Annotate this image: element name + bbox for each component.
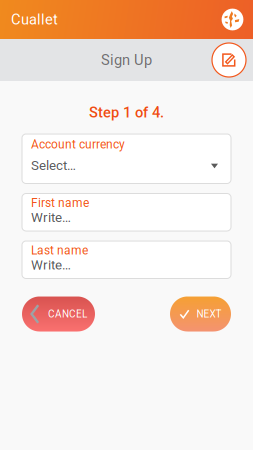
staticText: CANCEL xyxy=(48,308,87,320)
staticText: Select… xyxy=(31,158,76,173)
staticText: Sign Up xyxy=(101,51,152,69)
staticText: Cuallet xyxy=(11,11,58,28)
staticText: Write… xyxy=(31,210,71,225)
staticText: NEXT xyxy=(196,308,221,320)
staticText: Last name xyxy=(31,243,88,258)
staticText: Step 1 of 4. xyxy=(89,104,164,121)
button[interactable]: CANCEL xyxy=(22,296,95,331)
button[interactable]: NEXT xyxy=(170,296,231,331)
button[interactable]: Edit xyxy=(212,43,246,77)
staticText: Account currency xyxy=(31,137,125,152)
staticText: First name xyxy=(31,196,89,210)
staticText: Write… xyxy=(31,257,71,273)
button[interactable]: Language xyxy=(222,9,243,30)
